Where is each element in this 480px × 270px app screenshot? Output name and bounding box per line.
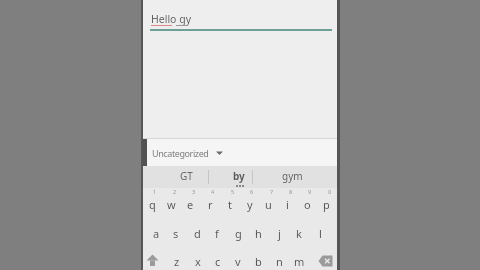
button[interactable]: gym bbox=[275, 166, 309, 186]
staticText: v bbox=[235, 254, 241, 269]
staticText: by bbox=[233, 169, 245, 183]
button[interactable]: o bbox=[298, 192, 317, 216]
staticText: u bbox=[265, 197, 272, 212]
button[interactable]: t bbox=[220, 192, 239, 216]
staticText: p bbox=[323, 197, 330, 212]
button[interactable]: h bbox=[248, 221, 268, 245]
staticText: s bbox=[173, 226, 179, 241]
staticText: i bbox=[286, 197, 289, 212]
staticText: l bbox=[319, 226, 322, 241]
button[interactable]: n bbox=[269, 249, 289, 270]
staticText: a bbox=[153, 226, 160, 241]
button[interactable]: g bbox=[228, 221, 248, 245]
staticText: 7 bbox=[270, 188, 274, 195]
button[interactable]: f bbox=[207, 221, 227, 245]
staticText: gym bbox=[282, 169, 303, 183]
button[interactable]: by bbox=[222, 166, 256, 186]
button[interactable]: b bbox=[248, 249, 268, 270]
button[interactable] bbox=[318, 255, 333, 267]
button[interactable]: q bbox=[143, 192, 162, 216]
button[interactable]: e bbox=[181, 192, 200, 216]
staticText: 8 bbox=[289, 188, 293, 195]
button[interactable]: m bbox=[289, 249, 309, 270]
button[interactable]: GT bbox=[169, 166, 203, 186]
button[interactable]: k bbox=[289, 221, 309, 245]
button[interactable]: w bbox=[162, 192, 181, 216]
staticText: f bbox=[215, 226, 219, 241]
staticText: 2 bbox=[173, 188, 177, 195]
staticText: 0 bbox=[328, 188, 332, 195]
staticText: c bbox=[215, 254, 221, 269]
staticText: t bbox=[228, 197, 232, 212]
staticText: 4 bbox=[211, 188, 215, 195]
staticText: GT bbox=[180, 169, 193, 183]
button[interactable]: s bbox=[166, 221, 186, 245]
button[interactable]: c bbox=[208, 249, 228, 270]
button[interactable]: u bbox=[259, 192, 278, 216]
button[interactable]: y bbox=[240, 192, 259, 216]
staticText: 3 bbox=[192, 188, 196, 195]
staticText: q bbox=[149, 197, 156, 212]
staticText: Hello gy bbox=[151, 12, 192, 26]
staticText: 5 bbox=[231, 188, 235, 195]
staticText: Uncategorized bbox=[152, 147, 209, 159]
staticText: b bbox=[255, 254, 262, 269]
button[interactable]: p bbox=[317, 192, 336, 216]
staticText: 1 bbox=[153, 188, 157, 195]
staticText: h bbox=[255, 226, 262, 241]
staticText: o bbox=[304, 197, 311, 212]
button[interactable]: l bbox=[310, 221, 330, 245]
button[interactable]: i bbox=[278, 192, 297, 216]
staticText: d bbox=[194, 226, 201, 241]
button[interactable] bbox=[146, 254, 159, 267]
button[interactable]: j bbox=[269, 221, 289, 245]
staticText: 9 bbox=[308, 188, 312, 195]
staticText: z bbox=[174, 254, 180, 269]
staticText: n bbox=[276, 254, 283, 269]
button[interactable]: z bbox=[167, 249, 187, 270]
button[interactable]: r bbox=[201, 192, 220, 216]
button[interactable]: v bbox=[228, 249, 248, 270]
button[interactable]: Uncategorized bbox=[143, 139, 337, 166]
button[interactable]: d bbox=[187, 221, 207, 245]
button[interactable]: a bbox=[146, 221, 166, 245]
staticText: 6 bbox=[250, 188, 254, 195]
staticText: e bbox=[187, 197, 194, 212]
staticText: y bbox=[247, 197, 253, 212]
button[interactable]: x bbox=[188, 249, 208, 270]
staticText: g bbox=[235, 226, 242, 241]
staticText: m bbox=[294, 254, 305, 269]
staticText: w bbox=[167, 197, 176, 212]
staticText: r bbox=[208, 197, 213, 212]
staticText: x bbox=[195, 254, 201, 269]
staticText: j bbox=[278, 226, 281, 241]
staticText: k bbox=[296, 226, 302, 241]
